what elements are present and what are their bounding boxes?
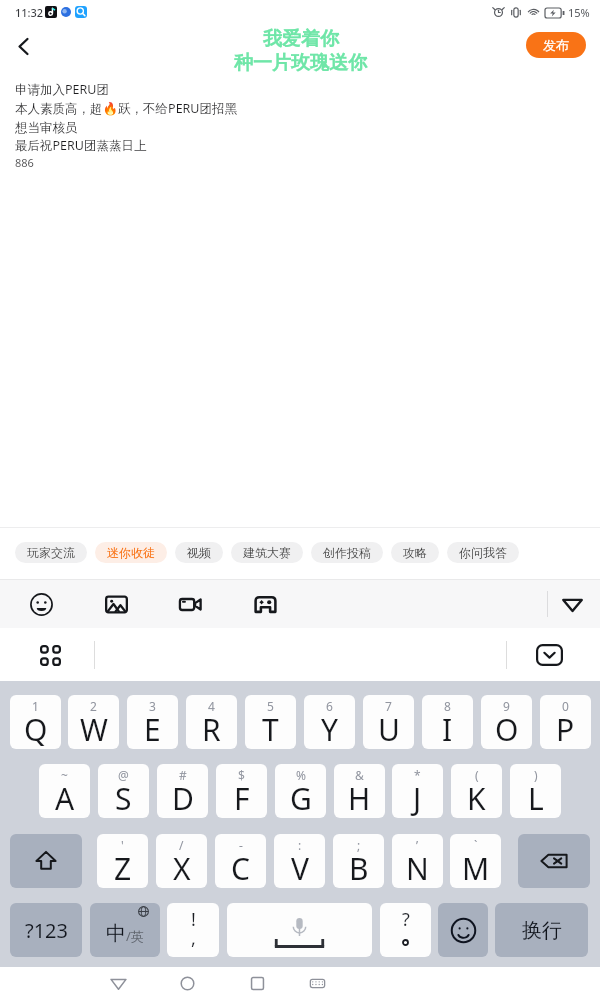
button[interactable]: 1 xyxy=(10,695,61,749)
staticText: P xyxy=(556,709,575,749)
button[interactable]: Keyboard layouts xyxy=(28,633,72,677)
staticText: $ xyxy=(238,767,245,783)
staticText: 发布 xyxy=(543,37,569,53)
button[interactable]: 3 xyxy=(127,695,178,749)
button[interactable]: $ xyxy=(216,764,267,818)
staticText: U xyxy=(378,709,400,749)
button[interactable]: 迷你收徒 xyxy=(95,542,167,563)
staticText: L xyxy=(528,778,544,818)
button[interactable]: 创作投稿 xyxy=(311,542,383,563)
staticText: M xyxy=(462,848,490,888)
staticText: 种一片玫瑰送你 xyxy=(234,51,367,75)
staticText: Z xyxy=(114,848,132,888)
staticText: Q xyxy=(24,709,48,749)
button[interactable]: ` xyxy=(450,834,501,888)
button[interactable]: 4 xyxy=(186,695,237,749)
staticText: F xyxy=(234,778,250,818)
button[interactable]: 9 xyxy=(481,695,532,749)
staticText: ( xyxy=(475,767,479,783)
button[interactable]: 5 xyxy=(245,695,296,749)
staticText: ` xyxy=(474,837,478,853)
staticText: /英 xyxy=(126,927,144,945)
staticText: 我爱着你 xyxy=(263,27,339,51)
staticText: 迷你收徒 xyxy=(107,545,155,560)
staticText: 3 xyxy=(149,698,156,714)
button[interactable]: 2 xyxy=(68,695,119,749)
button[interactable]: 发布 xyxy=(526,32,586,58)
button[interactable]: 玩家交流 xyxy=(15,542,87,563)
staticText: @ xyxy=(118,767,129,783)
button[interactable]: Language xyxy=(90,903,160,957)
staticText: ?123 xyxy=(25,917,68,944)
staticText: Y xyxy=(321,709,338,749)
button[interactable]: ( xyxy=(451,764,502,818)
button[interactable]: 6 xyxy=(304,695,355,749)
button[interactable]: / xyxy=(156,834,207,888)
staticText: C xyxy=(231,848,250,888)
staticText: 换行 xyxy=(522,918,562,943)
button[interactable]: 攻略 xyxy=(391,542,439,563)
button[interactable]: ~ xyxy=(39,764,90,818)
staticText: ? xyxy=(402,907,410,932)
staticText: J xyxy=(413,778,422,818)
button[interactable]: 8 xyxy=(422,695,473,749)
button[interactable]: 建筑大赛 xyxy=(231,542,303,563)
staticText: 15% xyxy=(568,5,590,20)
staticText: - xyxy=(239,837,243,853)
button[interactable]: ; xyxy=(333,834,384,888)
button[interactable]: Collapse keyboard xyxy=(527,633,571,677)
button[interactable]: Hide keyboard xyxy=(550,582,594,626)
button[interactable]: Enter xyxy=(495,903,588,957)
staticText: % xyxy=(296,767,306,783)
button[interactable]: Image xyxy=(94,582,138,626)
button[interactable]: Game xyxy=(243,582,287,626)
staticText: 你问我答 xyxy=(459,545,507,560)
button[interactable]: 视频 xyxy=(175,542,223,563)
button[interactable]: Keyboard xyxy=(297,967,337,1000)
staticText: ~ xyxy=(61,767,68,783)
staticText: 8 xyxy=(444,698,451,714)
button[interactable]: # xyxy=(157,764,208,818)
staticText: T xyxy=(262,709,279,749)
staticText: O xyxy=(495,709,519,749)
button[interactable]: ' xyxy=(97,834,148,888)
button[interactable]: * xyxy=(392,764,443,818)
button[interactable]: - xyxy=(215,834,266,888)
button[interactable]: Video xyxy=(168,582,212,626)
button[interactable]: ) xyxy=(510,764,561,818)
button[interactable]: Space xyxy=(227,903,372,957)
button[interactable]: Back xyxy=(98,967,138,1000)
staticText: 攻略 xyxy=(403,545,427,560)
button[interactable]: ! xyxy=(167,903,219,957)
button[interactable]: & xyxy=(334,764,385,818)
button[interactable]: 7 xyxy=(363,695,414,749)
staticText: 6 xyxy=(326,698,333,714)
staticText: & xyxy=(355,767,364,783)
button[interactable]: Symbols xyxy=(10,903,82,957)
button[interactable]: Emoji xyxy=(438,903,488,957)
staticText: 创作投稿 xyxy=(323,545,371,560)
button[interactable]: Backspace xyxy=(518,834,590,888)
staticText: ’ xyxy=(416,837,419,853)
button[interactable]: Back xyxy=(1,24,45,68)
button[interactable]: Shift xyxy=(10,834,82,888)
button[interactable]: ’ xyxy=(392,834,443,888)
staticText: X xyxy=(173,848,191,888)
staticText: # xyxy=(179,767,187,783)
staticText: 5 xyxy=(267,698,274,714)
staticText: ) xyxy=(534,767,538,783)
button[interactable]: : xyxy=(274,834,325,888)
button[interactable]: @ xyxy=(98,764,149,818)
button[interactable]: Home xyxy=(167,967,207,1000)
button[interactable]: % xyxy=(275,764,326,818)
staticText: I xyxy=(442,709,453,749)
button[interactable]: Recents xyxy=(237,967,277,1000)
button[interactable]: 你问我答 xyxy=(447,542,519,563)
staticText: 11:32 xyxy=(15,5,44,20)
staticText: / xyxy=(179,837,184,853)
button[interactable]: 0 xyxy=(540,695,591,749)
button[interactable]: Emoji xyxy=(19,582,63,626)
staticText: 7 xyxy=(385,698,392,714)
button[interactable]: Period xyxy=(380,903,431,957)
staticText: ! xyxy=(191,907,196,932)
